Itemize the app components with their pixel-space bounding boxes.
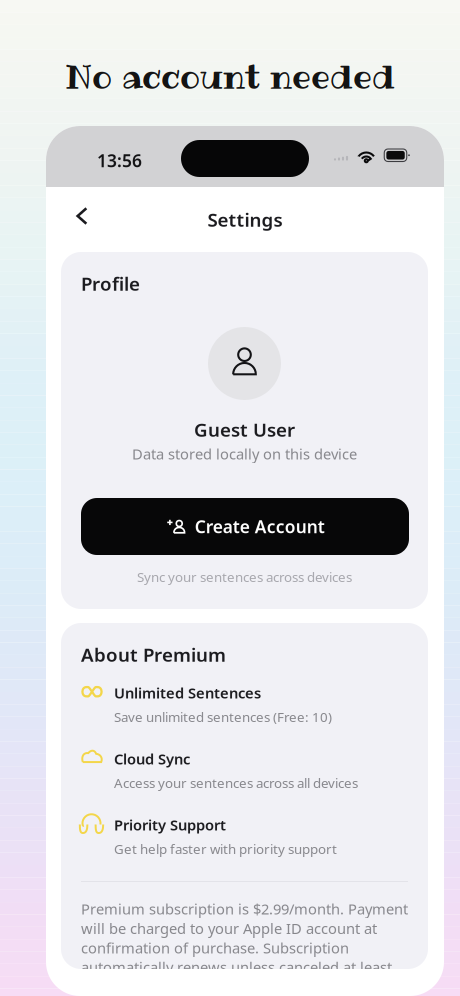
staticText: Guest User (194, 417, 295, 442)
staticText: Unlimited Sentences (114, 683, 261, 702)
button[interactable]: Back (60, 194, 104, 238)
staticText: Priority Support (114, 815, 226, 834)
staticText: Cloud Sync (114, 749, 190, 768)
staticText: 13:56 (97, 149, 142, 172)
staticText: Create Account (195, 515, 325, 538)
staticText: Access your sentences across all devices (114, 774, 358, 792)
staticText: No account needed (65, 54, 395, 99)
staticText: Settings (207, 207, 282, 232)
staticText: Data stored locally on this device (132, 444, 357, 463)
staticText: Save unlimited sentences (Free: 10) (114, 708, 332, 726)
staticText: Get help faster with priority support (114, 840, 337, 858)
button[interactable]: Create Account (81, 498, 409, 555)
staticText: About Premium (81, 642, 226, 667)
staticText: Sync your sentences across devices (137, 568, 352, 586)
staticText: Profile (81, 271, 140, 296)
staticText: Premium subscription is $2.99/month. Pay… (81, 899, 408, 996)
